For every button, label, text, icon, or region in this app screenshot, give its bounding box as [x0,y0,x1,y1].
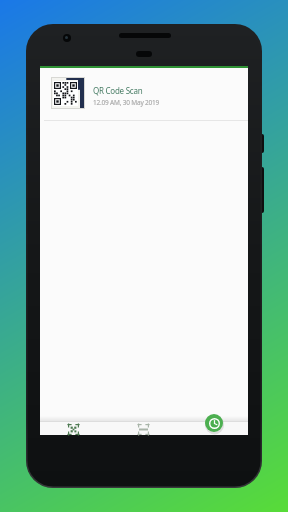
button[interactable] [58,421,89,435]
button[interactable] [205,414,223,432]
button[interactable] [128,421,159,435]
staticText: 12.09 AM, 30 May 2019 [93,98,160,107]
button[interactable]: QR Code Scan [40,68,248,120]
staticText: QR Code Scan [93,85,143,96]
